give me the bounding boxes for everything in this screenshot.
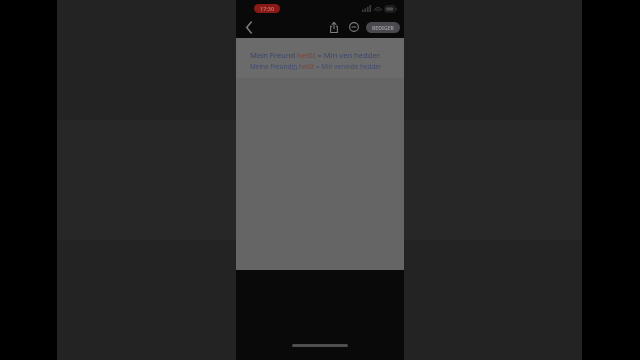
staticText: REDIGER xyxy=(372,24,394,31)
button[interactable]: Back xyxy=(240,18,258,36)
button[interactable]: Remove xyxy=(346,19,362,35)
staticText: Mein Freund heißt = Min ven hedder. xyxy=(250,50,381,60)
staticText: Meine Freundin heißt = Min veninde hedde… xyxy=(250,62,382,71)
button[interactable]: Share xyxy=(326,19,342,35)
button[interactable]: Mein Freund heißt = Min ven hedder. xyxy=(236,38,404,270)
button[interactable]: REDIGER xyxy=(366,22,400,33)
staticText: 17:30 xyxy=(260,5,275,12)
